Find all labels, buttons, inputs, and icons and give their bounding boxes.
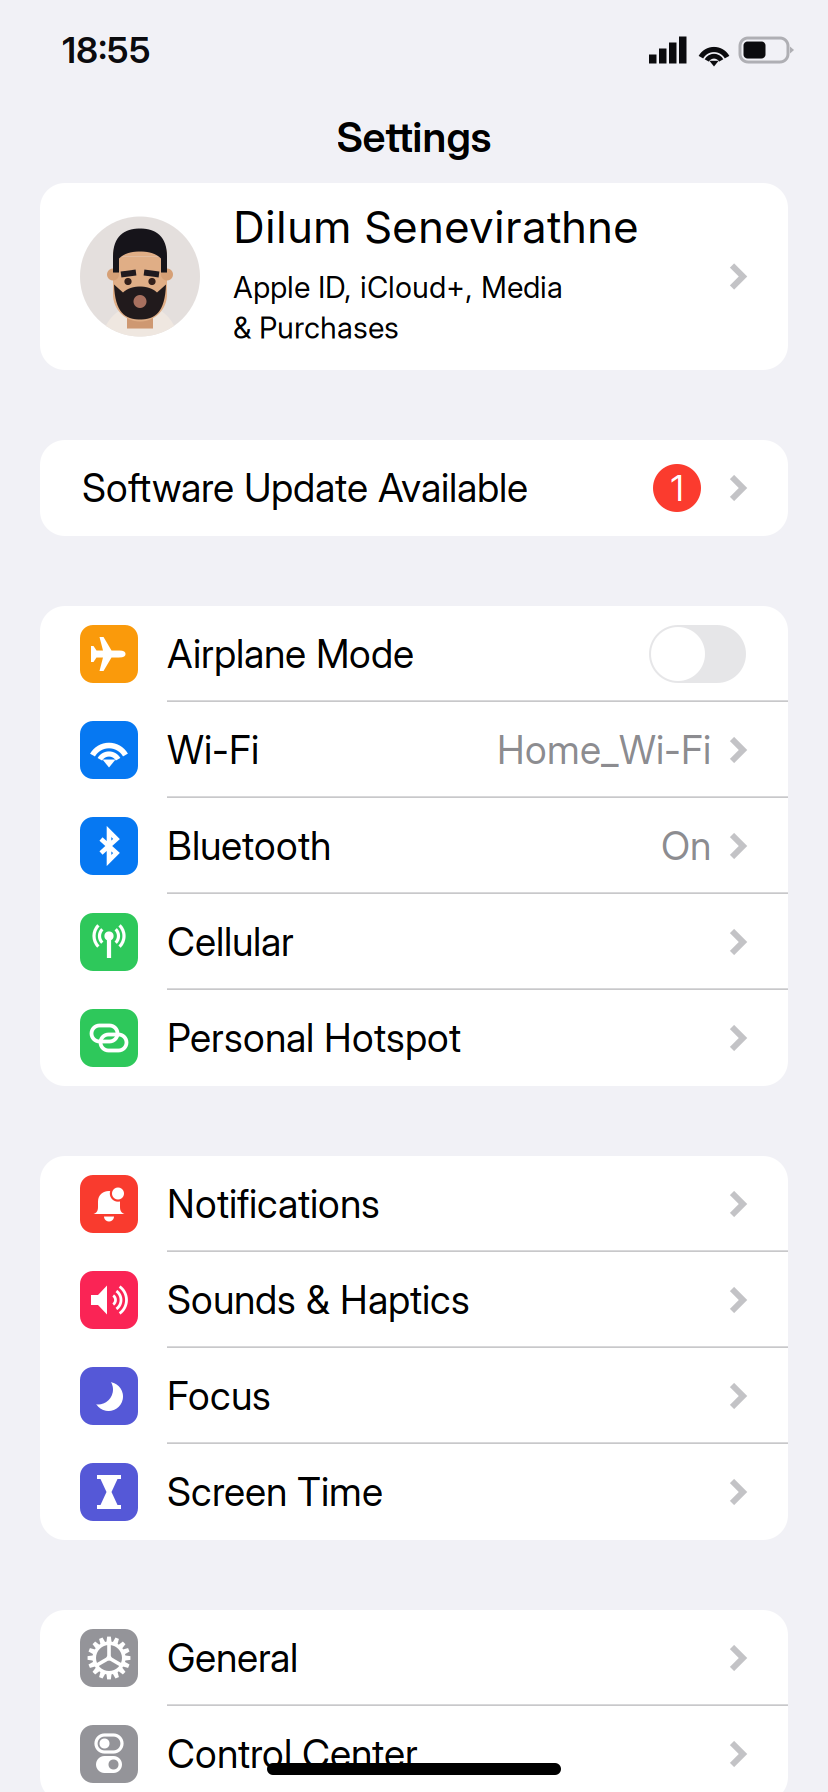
staticText: Bluetooth — [167, 823, 331, 869]
staticText: Cellular — [167, 919, 294, 965]
staticText: Sounds & Haptics — [167, 1277, 470, 1323]
button[interactable]: Notifications — [40, 1156, 788, 1252]
staticText: & Purchases — [233, 310, 399, 346]
staticText: 1 — [670, 466, 683, 510]
staticText: On — [661, 823, 711, 869]
staticText: General — [167, 1635, 298, 1681]
button[interactable]: Sounds & Haptics — [40, 1252, 788, 1348]
staticText: Settings — [336, 112, 491, 162]
button[interactable]: Focus — [40, 1348, 788, 1444]
button[interactable]: Software Update Available — [40, 440, 788, 536]
button[interactable]: Airplane Mode — [40, 606, 788, 702]
button[interactable]: Personal Hotspot — [40, 990, 788, 1086]
button[interactable]: Wi-Fi — [40, 702, 788, 798]
staticText: Software Update Available — [82, 465, 528, 511]
staticText: Airplane Mode — [167, 631, 414, 677]
staticText: Notifications — [167, 1181, 380, 1227]
staticText: 18:55 — [62, 28, 151, 72]
button[interactable]: Control Center — [40, 1706, 788, 1792]
button[interactable]: Screen Time — [40, 1444, 788, 1540]
staticText: Control Center — [167, 1731, 418, 1777]
button[interactable]: General — [40, 1610, 788, 1706]
button[interactable]: Cellular — [40, 894, 788, 990]
staticText: Personal Hotspot — [167, 1015, 461, 1061]
staticText: Apple ID, iCloud+, Media — [233, 270, 563, 305]
staticText: Dilum Senevirathne — [233, 200, 639, 254]
staticText: Wi-Fi — [167, 727, 259, 773]
button[interactable]: Dilum Senevirathne — [40, 183, 788, 370]
button[interactable]: Bluetooth — [40, 798, 788, 894]
staticText: Focus — [167, 1373, 271, 1419]
staticText: Screen Time — [167, 1469, 383, 1515]
staticText: Home_Wi-Fi — [497, 727, 711, 773]
